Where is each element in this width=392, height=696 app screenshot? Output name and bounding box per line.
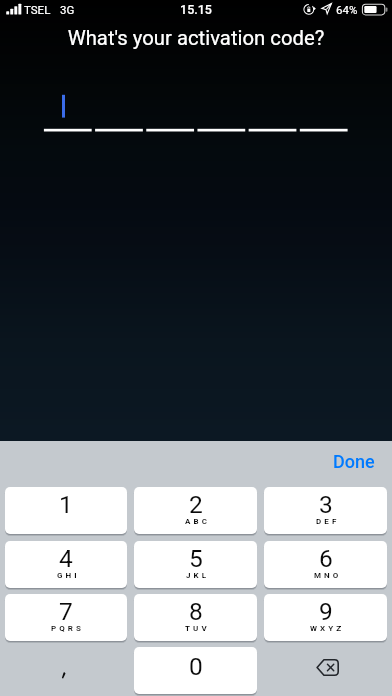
staticText: TSEL: [24, 3, 51, 16]
staticText: WXYZ: [310, 624, 345, 633]
staticText: JKL: [186, 571, 210, 580]
button[interactable]: 5: [134, 541, 257, 588]
button[interactable]: 4: [5, 541, 127, 588]
staticText: 3: [319, 490, 333, 519]
staticText: 64%: [336, 3, 358, 16]
button[interactable]: Backspace: [264, 647, 387, 694]
staticText: 0: [189, 652, 203, 681]
staticText: ABC: [185, 517, 211, 526]
button[interactable]: 0: [134, 647, 257, 694]
staticText: PQRS: [51, 624, 85, 633]
button[interactable]: 6: [264, 541, 387, 588]
button[interactable]: Comma: [5, 647, 127, 694]
staticText: GHI: [57, 571, 80, 580]
staticText: What's your activation code?: [0, 26, 392, 50]
staticText: MNO: [314, 571, 342, 580]
staticText: 4: [59, 544, 73, 573]
button[interactable]: 3: [264, 487, 387, 534]
staticText: TUV: [185, 624, 210, 633]
staticText: 7: [59, 597, 73, 626]
staticText: 5: [189, 544, 203, 573]
staticText: 3G: [60, 3, 75, 16]
button[interactable]: 2: [134, 487, 257, 534]
staticText: 8: [189, 597, 203, 626]
staticText: 6: [319, 544, 333, 573]
staticText: 2: [189, 490, 203, 519]
button[interactable]: 1: [5, 487, 127, 534]
staticText: DEF: [316, 517, 340, 526]
staticText: 15.15: [0, 2, 392, 17]
button[interactable]: 8: [134, 594, 257, 641]
button[interactable]: 9: [264, 594, 387, 641]
staticText: 1: [59, 490, 73, 519]
staticText: Done: [333, 451, 375, 472]
staticText: 9: [319, 597, 333, 626]
button[interactable]: Done: [313, 443, 392, 480]
button[interactable]: 7: [5, 594, 127, 641]
